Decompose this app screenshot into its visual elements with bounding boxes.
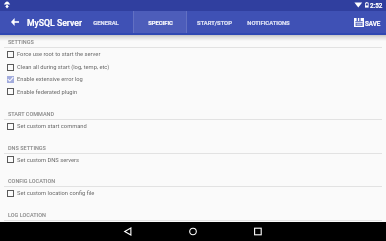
staticText: Enable federated plugin (17, 89, 78, 96)
button[interactable]: START/STOP (187, 11, 241, 35)
button[interactable]: Enable extensive error log (0, 73, 386, 86)
button[interactable]: NOTIFICATIONS (241, 11, 295, 35)
staticText: CONFIG LOCATION (8, 178, 56, 184)
staticText: Force use root to start the server (17, 51, 101, 58)
staticText: LOG LOCATION (8, 212, 46, 218)
button[interactable]: Navigate up (3, 10, 27, 34)
staticText: Clean all during start (log, temp, etc) (17, 64, 110, 71)
staticText: START COMMAND (8, 111, 55, 117)
staticText: Set custom location config file (17, 190, 95, 197)
button[interactable]: Home (180, 222, 206, 241)
staticText: Set custom DNS servers (17, 157, 79, 164)
staticText: SPECIFIC (148, 20, 173, 27)
staticText: Enable extensive error log (17, 76, 83, 83)
button[interactable]: SPECIFIC (133, 11, 187, 35)
button[interactable]: SAVE (354, 11, 381, 35)
staticText: NOTIFICATIONS (247, 20, 290, 27)
button[interactable]: Set custom DNS servers (0, 154, 386, 167)
button[interactable]: Set custom start command (0, 120, 386, 133)
staticText: SETTINGS (8, 39, 34, 45)
button[interactable]: Back (115, 222, 141, 241)
button[interactable]: Force use root to start the server (0, 48, 386, 61)
staticText: Set custom start command (17, 123, 87, 130)
button[interactable]: Set custom location config file (0, 187, 386, 200)
staticText: 2:52 (370, 2, 383, 9)
button[interactable]: Recent apps (245, 222, 271, 241)
staticText: SAVE (365, 20, 381, 27)
staticText: START/STOP (197, 20, 232, 27)
staticText: MySQL Server (27, 18, 82, 28)
staticText: DNS SETTINGS (8, 145, 46, 151)
staticText: GENERAL (93, 20, 119, 27)
button[interactable]: Enable federated plugin (0, 86, 386, 99)
button[interactable]: GENERAL (79, 11, 133, 35)
button[interactable]: Clean all during start (log, temp, etc) (0, 61, 386, 74)
